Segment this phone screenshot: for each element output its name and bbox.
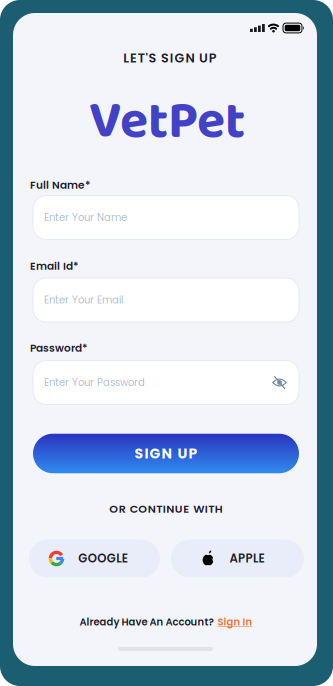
staticText: Password*	[30, 341, 87, 355]
staticText: LET'S SIGN UP	[123, 49, 217, 67]
staticText: GOOGLE	[78, 550, 128, 567]
staticText: OR CONTINUE WITH	[109, 501, 223, 517]
staticText: VetPet	[89, 80, 245, 164]
staticText: SIGN UP	[134, 444, 197, 463]
staticText: Full Name*	[30, 178, 90, 192]
staticText: Enter Your Name	[44, 210, 127, 224]
staticText: Sign In	[217, 615, 252, 629]
staticText: Email Id*	[30, 259, 78, 273]
staticText: Enter Your Password	[44, 375, 145, 389]
staticText: APPLE	[229, 550, 264, 567]
staticText: Already Have An Account?	[79, 615, 213, 629]
staticText: Enter Your Email	[44, 293, 123, 307]
